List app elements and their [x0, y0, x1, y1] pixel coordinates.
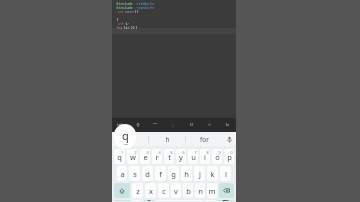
button[interactable]: u	[188, 149, 198, 164]
button[interactable]: r	[152, 149, 162, 164]
button[interactable]: q	[114, 149, 125, 164]
button[interactable]: z	[132, 183, 143, 198]
staticText: {}	[136, 122, 140, 128]
staticText: 4	[158, 150, 161, 155]
staticText: 8	[206, 150, 209, 155]
button[interactable]: ""	[146, 118, 164, 132]
staticText: i	[204, 152, 206, 162]
staticText: n	[198, 186, 203, 196]
button[interactable]: for	[186, 132, 222, 146]
staticText: c	[162, 186, 166, 196]
staticText: j	[199, 169, 201, 179]
button[interactable]: Emoji	[144, 200, 154, 201]
button[interactable]: tab	[112, 118, 129, 132]
button[interactable]: k	[207, 166, 218, 181]
button[interactable]: Enter	[217, 200, 234, 201]
staticText: i;	[125, 21, 130, 25]
button[interactable]: b	[183, 183, 193, 198]
button[interactable]: ()	[182, 118, 200, 132]
button[interactable]: v	[171, 183, 181, 198]
staticText: 0	[230, 150, 233, 155]
staticText: <conio.h>	[136, 5, 155, 9]
button[interactable]: hi	[112, 132, 148, 146]
staticText: g	[171, 169, 176, 179]
staticText: 7	[194, 150, 197, 155]
button[interactable]: w	[127, 149, 138, 164]
button[interactable]: m	[207, 183, 217, 198]
button[interactable]: {}	[129, 118, 146, 132]
staticText: )	[135, 25, 138, 29]
button[interactable]: y	[176, 149, 186, 164]
staticText: m	[208, 186, 216, 196]
staticText: t	[168, 152, 171, 162]
button[interactable]: l	[220, 166, 231, 181]
staticText: w	[130, 152, 136, 162]
staticText: b	[226, 122, 229, 128]
button[interactable]: Shift	[114, 183, 130, 198]
staticText: y	[179, 152, 183, 162]
staticText: {	[116, 17, 119, 21]
staticText: tab	[117, 122, 124, 128]
button[interactable]: <	[200, 118, 218, 132]
staticText: s	[133, 169, 137, 179]
staticText: #include	[116, 1, 133, 5]
button[interactable]: t	[164, 149, 174, 164]
staticText: 3	[146, 150, 149, 155]
staticText: 6	[182, 150, 185, 155]
button[interactable]: p	[224, 149, 234, 164]
staticText: r	[155, 152, 159, 162]
button[interactable]: d	[142, 166, 153, 181]
button[interactable]: a	[117, 166, 127, 181]
staticText: 10	[130, 25, 135, 29]
staticText: x	[149, 186, 153, 196]
button[interactable]: f	[155, 166, 166, 181]
button[interactable]: g	[168, 166, 179, 181]
staticText: v	[174, 186, 178, 196]
staticText: h	[184, 169, 189, 179]
button[interactable]: s	[129, 166, 140, 181]
button[interactable]: b	[218, 118, 236, 132]
staticText: ;	[172, 122, 174, 128]
staticText: p	[227, 152, 232, 162]
staticText: hi	[127, 135, 133, 144]
staticText: l	[225, 169, 227, 179]
staticText: for	[116, 25, 123, 29]
button[interactable]: c	[158, 183, 169, 198]
staticText: ()	[134, 9, 139, 13]
staticText: k	[210, 169, 215, 179]
staticText: (i<	[123, 25, 130, 29]
button[interactable]: j	[194, 166, 205, 181]
staticText: q	[117, 152, 122, 162]
button[interactable]: ;	[164, 118, 182, 132]
staticText: z	[136, 186, 140, 196]
staticText: 2	[134, 150, 137, 155]
staticText: 5	[170, 150, 173, 155]
button[interactable]: i	[200, 149, 210, 164]
button[interactable]: e	[140, 149, 150, 164]
staticText: int	[116, 21, 125, 25]
staticText: 9	[218, 150, 221, 155]
button[interactable]: h	[181, 166, 192, 181]
staticText: 1	[121, 150, 124, 155]
staticText: ()	[190, 122, 193, 128]
button[interactable]: Voice input	[222, 132, 236, 146]
button[interactable]: Backspace	[219, 183, 234, 198]
staticText: ""	[153, 122, 157, 128]
button[interactable]: o	[212, 149, 222, 164]
button[interactable]: x	[145, 183, 156, 198]
staticText: f	[159, 169, 162, 179]
staticText: o	[215, 152, 220, 162]
staticText: b	[186, 186, 191, 196]
button[interactable]: h	[149, 132, 185, 146]
staticText: q	[122, 128, 129, 143]
staticText: #include	[116, 5, 133, 9]
button[interactable]: n	[195, 183, 205, 198]
